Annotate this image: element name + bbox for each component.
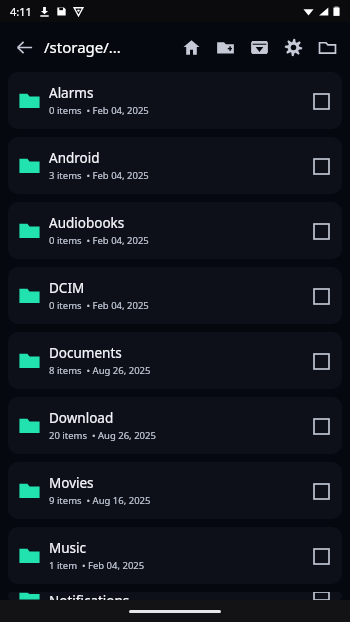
button[interactable]: DCIM [8,267,342,324]
staticText: 0 items • Feb 04, 2025 [49,104,149,117]
staticText: 8 items • Aug 26, 2025 [49,364,151,377]
staticText: 3 items • Feb 04, 2025 [49,169,149,182]
button[interactable]: Select DCIM [304,279,338,313]
button[interactable]: Android [8,137,342,194]
button[interactable]: Select Android [304,149,338,183]
button[interactable]: Select Notifications [304,592,338,600]
button[interactable]: Notifications [8,592,342,600]
button[interactable]: Select Download [304,409,338,443]
staticText: Audiobooks [49,214,125,232]
button[interactable]: Select Movies [304,474,338,508]
button[interactable]: Download [242,30,276,64]
staticText: 1 item • Feb 04, 2025 [49,559,145,572]
staticText: /storage/... [44,37,121,57]
button[interactable]: Documents [8,332,342,389]
button[interactable]: Audiobooks [8,202,342,259]
staticText: Notifications [49,592,130,600]
staticText: DCIM [49,279,85,297]
staticText: 9 items • Aug 16, 2025 [49,494,151,507]
staticText: 4:11 [10,4,32,19]
button[interactable]: Select Audiobooks [304,214,338,248]
staticText: Alarms [49,84,94,102]
button[interactable]: Download [8,397,342,454]
staticText: Music [49,539,87,557]
button[interactable]: Select Documents [304,344,338,378]
staticText: Documents [49,344,122,362]
button[interactable]: Create new folder [208,30,242,64]
button[interactable]: Movies [8,462,342,519]
button[interactable]: Home [174,30,208,64]
button[interactable]: Select Alarms [304,84,338,118]
staticText: Movies [49,474,94,492]
staticText: 0 items • Feb 04, 2025 [49,234,149,247]
staticText: 20 items • Aug 26, 2025 [49,429,156,442]
button[interactable]: Settings [276,30,310,64]
staticText: Android [49,149,100,167]
button[interactable]: Folder [310,30,344,64]
button[interactable]: Music [8,527,342,584]
button[interactable]: Alarms [8,72,342,129]
button[interactable]: Select Music [304,539,338,573]
staticText: 0 items • Feb 04, 2025 [49,299,149,312]
button[interactable]: Back [8,31,40,63]
staticText: Download [49,409,114,427]
